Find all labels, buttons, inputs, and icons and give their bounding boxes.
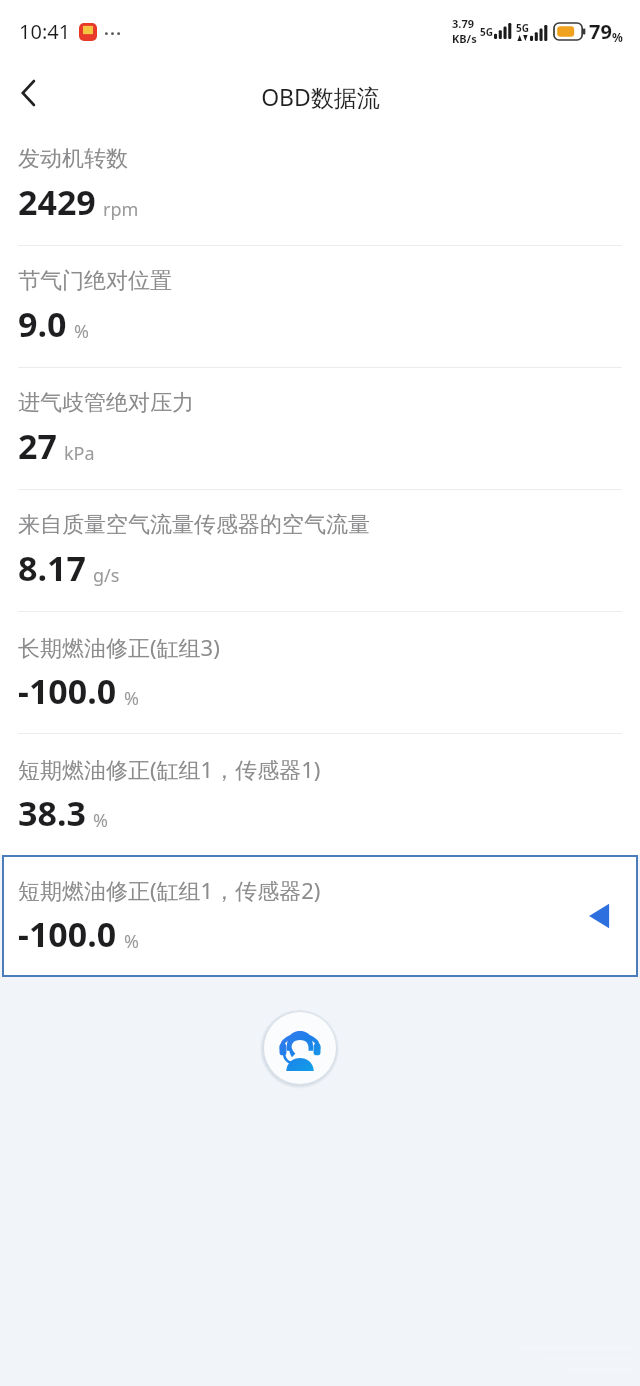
staticText: 短期燃油修正(缸组1，传感器1) bbox=[18, 754, 321, 784]
staticText: 38.3 bbox=[18, 790, 86, 836]
staticText: rpm bbox=[103, 197, 139, 222]
button[interactable]: Customer service bbox=[262, 1010, 337, 1085]
staticText: 10:41 bbox=[19, 18, 71, 45]
staticText: % bbox=[93, 808, 108, 833]
staticText: 来自质量空气流量传感器的空气流量 bbox=[18, 511, 370, 539]
staticText: 8.17 bbox=[18, 545, 86, 591]
staticText: 2429 bbox=[18, 179, 96, 225]
staticText: OBD数据流 bbox=[261, 81, 380, 112]
staticText: % bbox=[124, 686, 139, 711]
staticText: kPa bbox=[64, 441, 95, 466]
staticText: 发动机转数 bbox=[18, 145, 128, 173]
button[interactable]: 短期燃油修正(缸组1，传感器2) bbox=[2, 855, 638, 977]
staticText: g/s bbox=[93, 563, 120, 588]
staticText: % bbox=[612, 29, 623, 45]
staticText: % bbox=[124, 929, 139, 954]
button[interactable]: 长期燃油修正(缸组3) bbox=[0, 612, 640, 733]
staticText: 5G bbox=[516, 21, 529, 35]
staticText: 短期燃油修正(缸组1，传感器2) bbox=[18, 875, 321, 905]
staticText: -100.0 bbox=[18, 911, 117, 957]
staticText: 进气歧管绝对压力 bbox=[18, 389, 194, 417]
staticText: 27 bbox=[18, 423, 57, 469]
staticText: 3.79 bbox=[452, 16, 474, 31]
staticText: 5G bbox=[480, 25, 493, 39]
staticText: 9.0 bbox=[18, 301, 67, 347]
button[interactable]: 短期燃油修正(缸组1，传感器1) bbox=[0, 734, 640, 855]
button[interactable]: 节气门绝对位置 bbox=[0, 246, 640, 367]
staticText: 79 bbox=[589, 18, 612, 45]
button[interactable]: Back bbox=[0, 65, 56, 121]
button[interactable]: 来自质量空气流量传感器的空气流量 bbox=[0, 490, 640, 611]
button[interactable]: 发动机转数 bbox=[0, 124, 640, 245]
staticText: 长期燃油修正(缸组3) bbox=[18, 632, 220, 662]
staticText: 节气门绝对位置 bbox=[18, 267, 172, 295]
button[interactable]: Expand bbox=[581, 898, 617, 934]
staticText: % bbox=[74, 319, 89, 344]
button[interactable]: 进气歧管绝对压力 bbox=[0, 368, 640, 489]
staticText: KB/s bbox=[452, 31, 477, 46]
staticText: -100.0 bbox=[18, 668, 117, 714]
